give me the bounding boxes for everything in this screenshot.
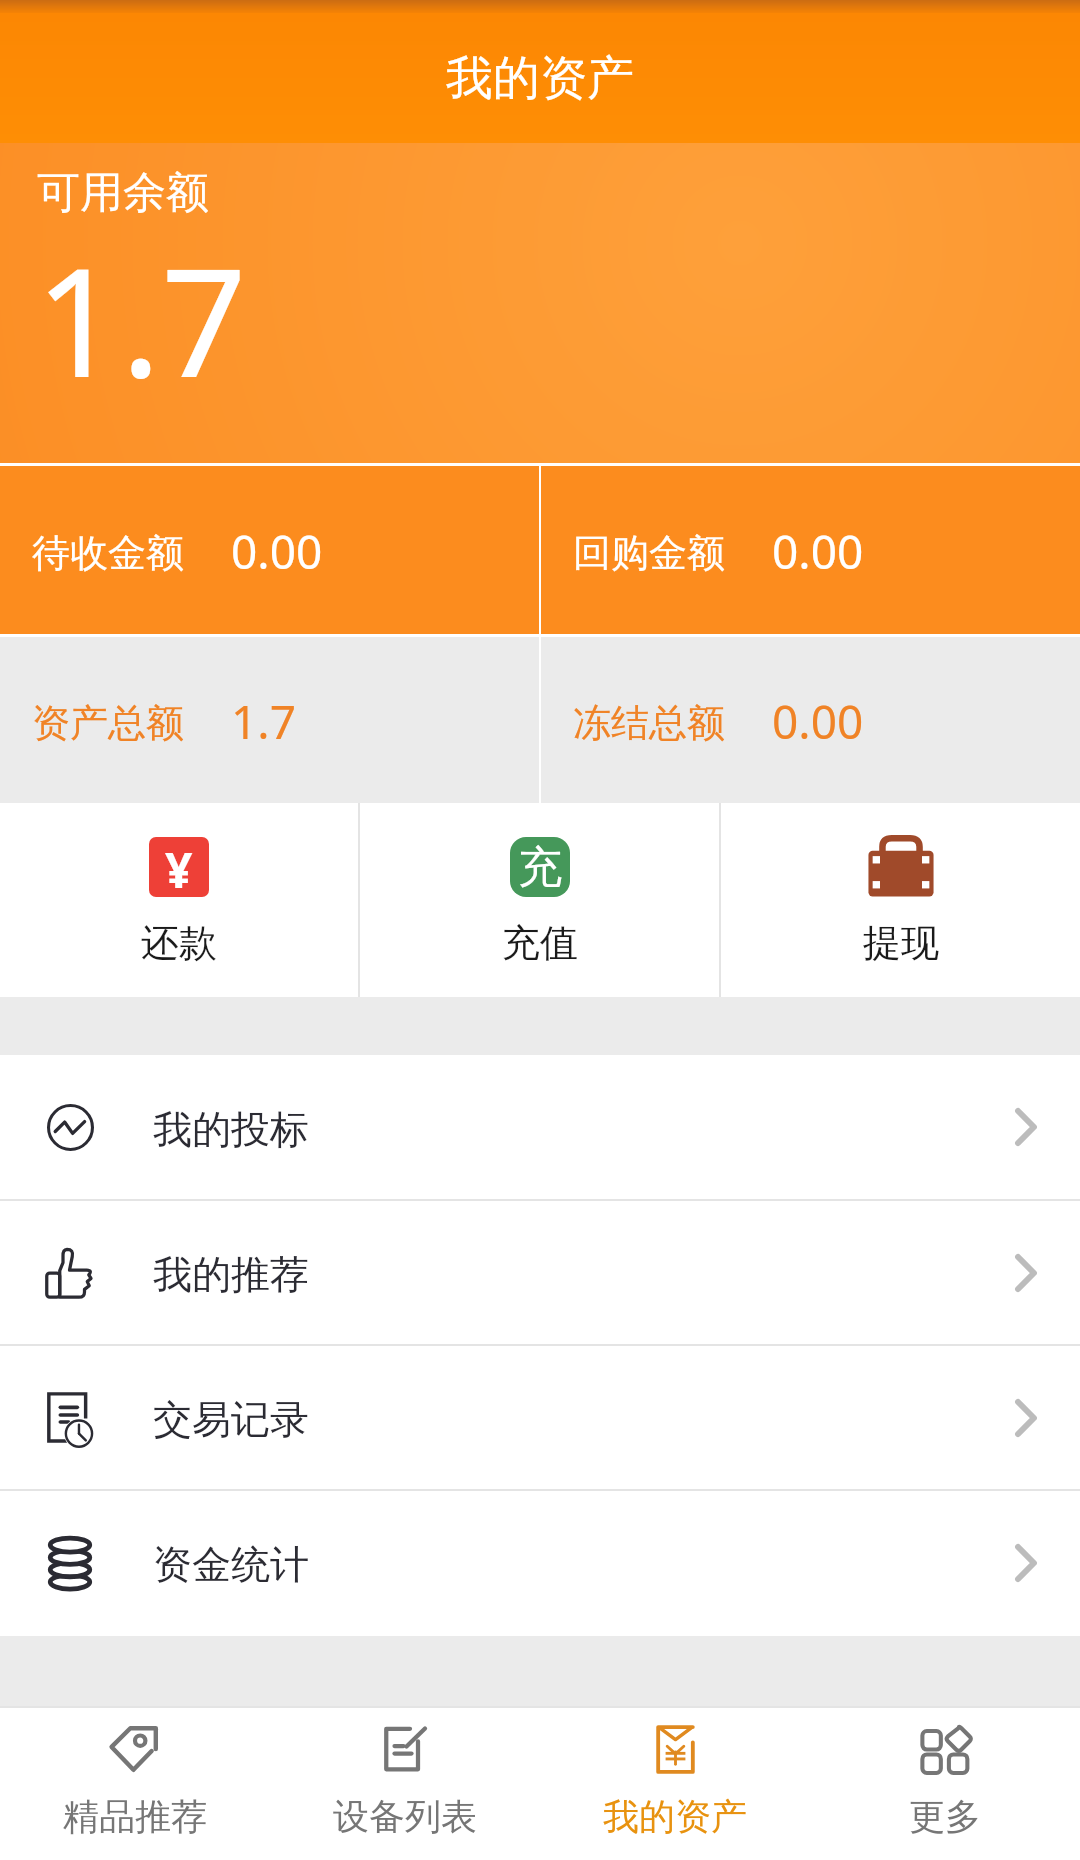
staticText: 1.7 <box>231 690 296 753</box>
staticText: 1.7 <box>35 217 247 421</box>
button[interactable]: 我的资产 <box>540 1708 810 1860</box>
staticText: 设备列表 <box>333 1794 477 1839</box>
button[interactable]: 我的投标 <box>0 1055 1080 1199</box>
staticText: 我的推荐 <box>153 1250 309 1299</box>
button[interactable]: 资产总额 <box>0 637 539 803</box>
staticText: 可用余额 <box>37 166 209 220</box>
staticText: 我的资产 <box>603 1794 747 1839</box>
staticText: 资金统计 <box>153 1540 309 1589</box>
staticText: 充值 <box>502 919 578 967</box>
staticText: 0.00 <box>772 520 864 583</box>
staticText: 我的投标 <box>153 1105 309 1154</box>
staticText: 更多 <box>909 1794 981 1839</box>
button[interactable]: 交易记录 <box>0 1346 1080 1489</box>
staticText: 精品推荐 <box>63 1794 207 1839</box>
button[interactable]: 冻结总额 <box>541 637 1080 803</box>
button[interactable]: ¥ <box>0 803 358 997</box>
button[interactable]: 回购金额 <box>541 466 1080 634</box>
button[interactable]: 我的推荐 <box>0 1201 1080 1344</box>
staticText: 交易记录 <box>153 1395 309 1444</box>
button[interactable]: 提现 <box>721 803 1080 997</box>
button[interactable]: 待收金额 <box>0 466 539 634</box>
staticText: 我的资产 <box>446 49 634 108</box>
button[interactable]: 充 <box>360 803 719 997</box>
staticText: 0.00 <box>772 690 864 753</box>
button[interactable]: 设备列表 <box>270 1708 540 1860</box>
staticText: 资产总额 <box>32 699 184 747</box>
staticText: 还款 <box>141 919 217 967</box>
staticText: 0.00 <box>231 520 323 583</box>
staticText: 回购金额 <box>573 529 725 577</box>
staticText: 充 <box>518 840 562 895</box>
staticText: 待收金额 <box>32 529 184 577</box>
staticText: ¥ <box>165 837 193 897</box>
button[interactable]: 资金统计 <box>0 1491 1080 1634</box>
button[interactable]: 精品推荐 <box>0 1708 270 1860</box>
button[interactable]: 更多 <box>810 1708 1080 1860</box>
staticText: 冻结总额 <box>573 699 725 747</box>
staticText: 提现 <box>863 919 939 967</box>
